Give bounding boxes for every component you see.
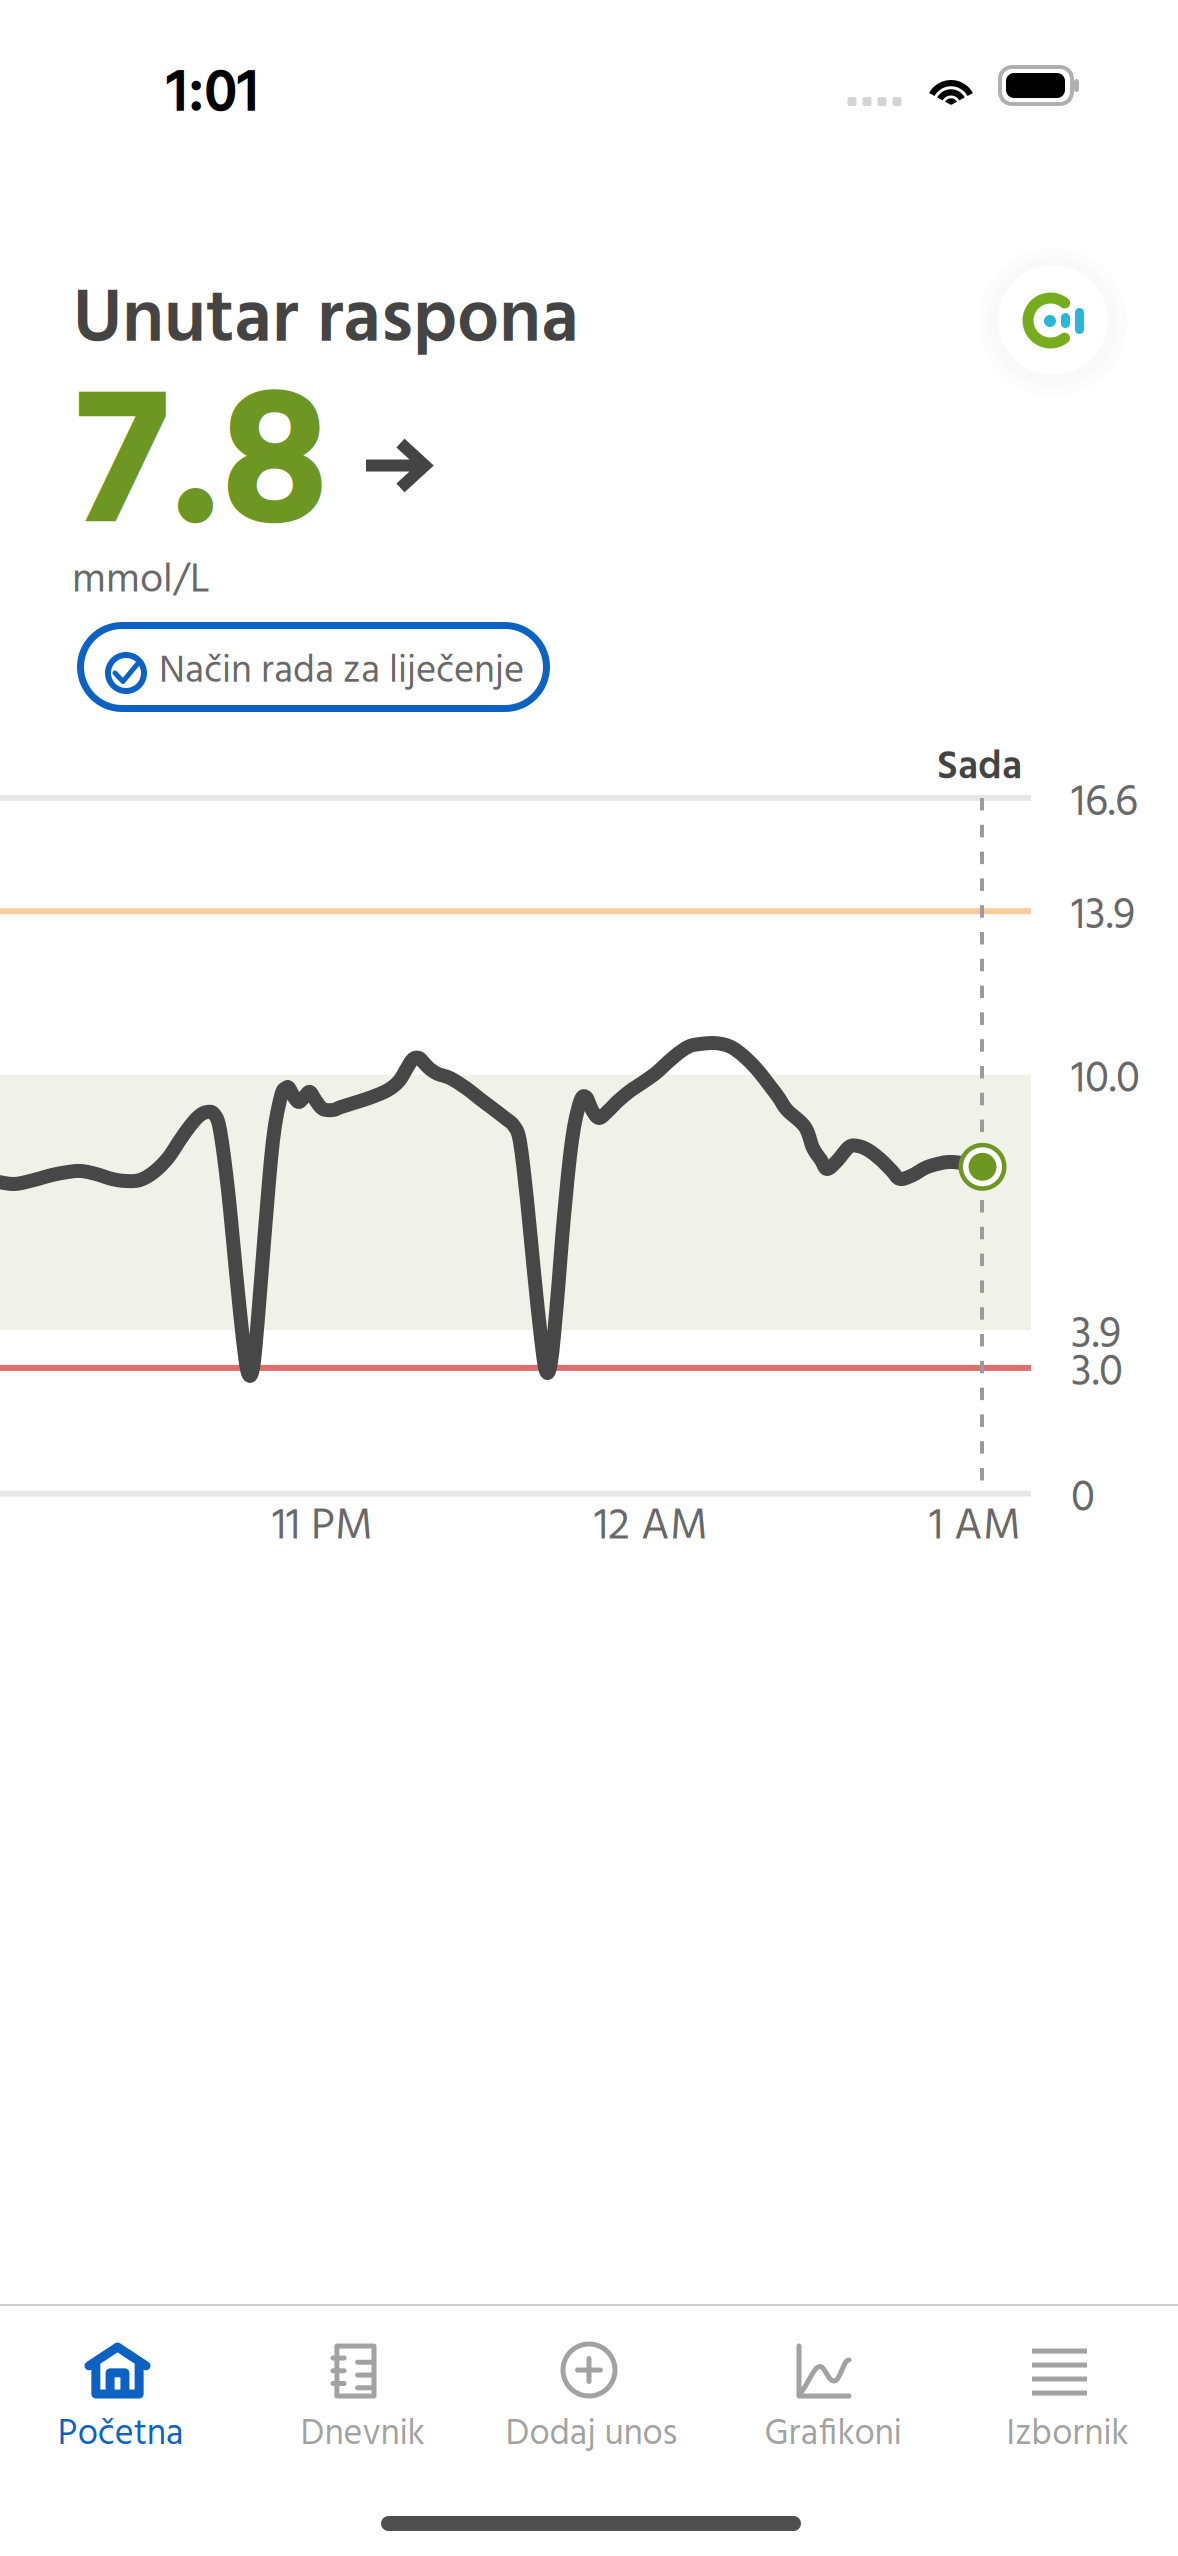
staticText: 3.0 [1071, 1338, 1123, 1409]
staticText: 10.0 [1071, 1045, 1140, 1115]
staticText: Sada [937, 736, 1022, 800]
staticText: Početna [58, 2406, 184, 2464]
button[interactable]: Dexcom [0, 0, 1178, 400]
staticText: 1 AM [929, 1492, 1021, 1562]
staticText: Dodaj unos [505, 2406, 677, 2464]
button[interactable]: Dodaj unos [0, 0, 1178, 2556]
staticText: 11 PM [272, 1492, 373, 1562]
button[interactable]: Dnevnik [0, 0, 1178, 2556]
staticText: Izbornik [1006, 2406, 1128, 2464]
button[interactable]: Način rada za liječenje [77, 622, 550, 712]
staticText: 16.6 [1071, 769, 1138, 839]
staticText: 1:01 [166, 46, 259, 144]
staticText: Dnevnik [300, 2406, 424, 2464]
staticText: Način rada za liječenje [159, 641, 524, 703]
staticText: Unutar raspona [73, 262, 579, 381]
button[interactable]: Grafikoni [0, 0, 1178, 2556]
button[interactable]: Izbornik [0, 0, 1178, 2556]
staticText: 12 AM [594, 1492, 708, 1562]
staticText: mmol/L [72, 548, 210, 614]
staticText: 7.8 [75, 313, 329, 629]
button[interactable]: Početna [0, 0, 1178, 2556]
staticText: 13.9 [1071, 882, 1135, 952]
staticText: Grafikoni [765, 2406, 902, 2464]
staticText: 3.9 [1071, 1301, 1121, 1371]
staticText: 0 [1071, 1464, 1095, 1534]
